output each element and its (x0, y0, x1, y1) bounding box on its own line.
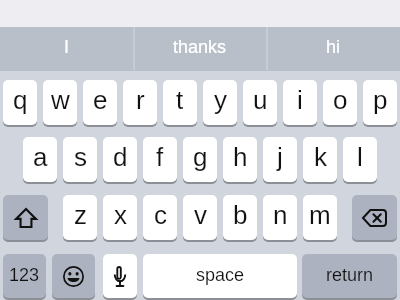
button[interactable]: q (3, 80, 37, 125)
button[interactable]: c (143, 195, 177, 240)
staticText: space (196, 265, 245, 285)
staticText: m (309, 200, 331, 229)
staticText: l (357, 142, 363, 171)
button[interactable]: w (43, 80, 77, 125)
button[interactable]: h (223, 137, 257, 182)
button[interactable]: return (302, 254, 397, 298)
staticText: i (297, 85, 303, 114)
button[interactable]: Emoji (52, 254, 95, 298)
button[interactable]: o (323, 80, 357, 125)
button[interactable]: Shift (3, 195, 48, 240)
staticText: x (114, 200, 127, 229)
staticText: thanks (173, 37, 227, 57)
staticText: z (74, 200, 87, 229)
button[interactable]: 123 (3, 254, 46, 298)
button[interactable]: p (363, 80, 397, 125)
button[interactable]: s (63, 137, 97, 182)
staticText: j (277, 142, 283, 171)
staticText: k (314, 142, 327, 171)
button[interactable]: u (243, 80, 277, 125)
staticText: return (326, 265, 374, 285)
button[interactable]: a (23, 137, 57, 182)
button[interactable]: thanks (133, 27, 266, 71)
button[interactable]: d (103, 137, 137, 182)
button[interactable]: x (103, 195, 137, 240)
button[interactable]: n (263, 195, 297, 240)
staticText: 123 (9, 265, 40, 285)
staticText: g (193, 142, 208, 171)
button[interactable]: v (183, 195, 217, 240)
button[interactable]: j (263, 137, 297, 182)
button[interactable]: y (203, 80, 237, 125)
staticText: n (273, 200, 288, 229)
staticText: p (373, 85, 388, 114)
button[interactable]: Dictation (103, 254, 137, 298)
button[interactable]: space (143, 254, 297, 298)
button[interactable]: t (163, 80, 197, 125)
staticText: c (154, 200, 167, 229)
staticText: r (136, 85, 145, 114)
staticText: q (13, 85, 28, 114)
button[interactable]: hi (267, 27, 400, 71)
staticText: o (333, 85, 348, 114)
button[interactable]: r (123, 80, 157, 125)
staticText: u (253, 85, 268, 114)
button[interactable]: e (83, 80, 117, 125)
button[interactable]: m (303, 195, 337, 240)
button[interactable]: g (183, 137, 217, 182)
staticText: v (194, 200, 207, 229)
button[interactable]: l (343, 137, 377, 182)
button[interactable]: i (283, 80, 317, 125)
button[interactable]: I (0, 27, 133, 71)
button[interactable]: z (63, 195, 97, 240)
staticText: y (214, 85, 227, 114)
button[interactable]: b (223, 195, 257, 240)
staticText: d (113, 142, 128, 171)
staticText: t (176, 85, 184, 114)
staticText: I (64, 37, 70, 57)
staticText: b (233, 200, 248, 229)
button[interactable]: f (143, 137, 177, 182)
button[interactable]: k (303, 137, 337, 182)
staticText: hi (326, 37, 341, 57)
staticText: e (93, 85, 108, 114)
staticText: s (74, 142, 87, 171)
staticText: f (156, 142, 164, 171)
staticText: h (233, 142, 248, 171)
staticText: w (51, 85, 70, 114)
staticText: a (33, 142, 48, 171)
button[interactable]: Backspace (352, 195, 397, 240)
